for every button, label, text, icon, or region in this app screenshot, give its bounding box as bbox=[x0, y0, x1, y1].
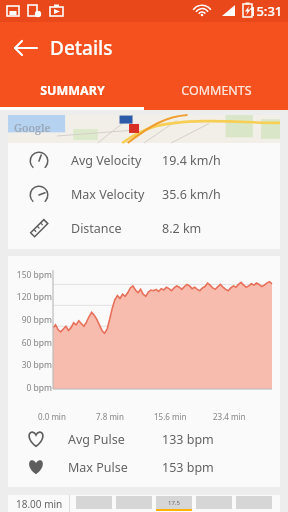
staticText: COMMENTS bbox=[181, 82, 252, 99]
staticText: 90 bpm bbox=[12, 314, 52, 326]
staticText: 35.6 km/h bbox=[162, 186, 221, 203]
button[interactable]: COMMENTS bbox=[144, 74, 288, 107]
staticText: Avg Pulse bbox=[68, 431, 125, 448]
staticText: 17.5 bbox=[168, 499, 180, 507]
staticText: 30 bpm bbox=[12, 359, 52, 371]
staticText: Details bbox=[50, 35, 113, 61]
button[interactable]: SUMMARY bbox=[0, 74, 144, 107]
staticText: 153 bpm bbox=[162, 459, 214, 476]
staticText: 120 bpm bbox=[12, 291, 52, 303]
staticText: Avg Velocity bbox=[71, 152, 142, 169]
staticText: Distance bbox=[71, 220, 122, 237]
staticText: 60 bpm bbox=[12, 337, 52, 349]
button[interactable]: Max Pulse bbox=[8, 453, 280, 481]
staticText: 19.4 km/h bbox=[162, 152, 221, 169]
button[interactable] bbox=[116, 496, 152, 511]
staticText: 15.6 min bbox=[154, 411, 187, 422]
staticText: 0 bpm bbox=[12, 382, 52, 394]
staticText: 0.0 min bbox=[38, 411, 66, 422]
button[interactable]: 17.5 bbox=[156, 496, 192, 511]
staticText: 7.8 min bbox=[96, 411, 124, 422]
button[interactable]: Max Velocity bbox=[8, 177, 280, 211]
staticText: SUMMARY bbox=[40, 82, 105, 99]
button[interactable]: Back bbox=[8, 30, 44, 66]
button[interactable] bbox=[196, 496, 232, 511]
button[interactable]: Avg Pulse bbox=[8, 425, 280, 453]
button[interactable] bbox=[76, 496, 112, 511]
staticText: Google bbox=[14, 120, 51, 135]
staticText: Max Pulse bbox=[68, 459, 128, 476]
staticText: 15:31 bbox=[249, 2, 283, 20]
button[interactable] bbox=[236, 496, 272, 511]
staticText: 23.4 min bbox=[213, 411, 246, 422]
staticText: 133 bpm bbox=[162, 431, 214, 448]
staticText: 18.00 min bbox=[16, 497, 63, 511]
staticText: Max Velocity bbox=[71, 186, 145, 203]
staticText: 150 bpm bbox=[12, 269, 52, 281]
button[interactable]: Avg Velocity bbox=[8, 143, 280, 177]
staticText: 8.2 km bbox=[162, 220, 202, 237]
button[interactable]: Distance bbox=[8, 211, 280, 245]
